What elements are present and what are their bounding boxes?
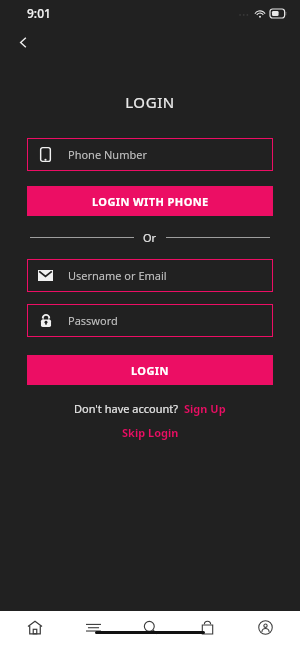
staticText: Username or Email <box>68 268 167 283</box>
button[interactable]: Home <box>13 611 57 649</box>
staticText: 9:01 <box>27 5 51 21</box>
staticText: Phone Number <box>68 147 147 162</box>
button[interactable]: Phone Number <box>27 138 273 171</box>
button[interactable]: Skip Login <box>118 423 183 442</box>
staticText: LOGIN WITH PHONE <box>92 194 209 209</box>
staticText: Skip Login <box>122 425 179 440</box>
button[interactable]: Back <box>10 29 36 55</box>
staticText: Password <box>68 313 118 328</box>
button[interactable]: LOGIN <box>27 355 273 385</box>
button[interactable]: LOGIN WITH PHONE <box>27 186 273 216</box>
button[interactable]: Cart <box>185 611 229 649</box>
staticText: Or <box>143 230 157 245</box>
staticText: Don't have account? <box>74 401 179 416</box>
button[interactable]: Profile <box>243 611 287 649</box>
button[interactable]: Search <box>128 611 172 649</box>
staticText: LOGIN <box>131 363 169 378</box>
button[interactable]: Password <box>27 304 273 337</box>
staticText: LOGIN <box>0 92 300 112</box>
button[interactable]: Menu <box>71 611 115 649</box>
button[interactable]: Sign Up <box>184 401 226 416</box>
button[interactable]: Username or Email <box>27 259 273 292</box>
staticText: Sign Up <box>184 401 226 416</box>
